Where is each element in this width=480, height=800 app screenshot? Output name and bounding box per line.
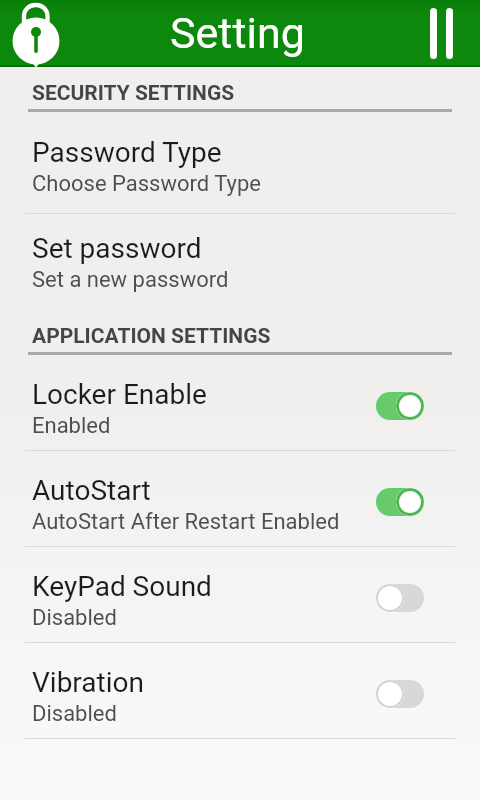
button[interactable]: Vibration	[0, 643, 480, 738]
button[interactable]: AutoStart	[0, 451, 480, 546]
staticText: Setting	[170, 8, 305, 58]
staticText: AutoStart	[32, 474, 151, 506]
button[interactable]	[376, 584, 424, 612]
button[interactable]: KeyPad Sound	[0, 547, 480, 642]
button[interactable]: Set password	[0, 214, 480, 310]
staticText: Set a new password	[32, 267, 229, 293]
button[interactable]	[376, 392, 424, 420]
staticText: Password Type	[32, 136, 222, 168]
button[interactable]	[376, 488, 424, 516]
staticText: Locker Enable	[32, 378, 207, 410]
button[interactable]	[430, 8, 453, 59]
staticText: Disabled	[32, 701, 117, 727]
staticText: Vibration	[32, 666, 144, 698]
button[interactable]: Password Type	[0, 112, 480, 213]
staticText: Disabled	[32, 605, 117, 631]
staticText: KeyPad Sound	[32, 570, 212, 602]
staticText: SECURITY SETTINGS	[32, 81, 235, 106]
staticText: APPLICATION SETTINGS	[32, 324, 271, 349]
staticText: Choose Password Type	[32, 171, 261, 197]
button[interactable]	[376, 680, 424, 708]
staticText: Set password	[32, 232, 202, 264]
staticText: AutoStart After Restart Enabled	[32, 509, 340, 535]
button[interactable]	[7, 0, 65, 66]
button[interactable]: Locker Enable	[0, 355, 480, 450]
staticText: Enabled	[32, 413, 111, 439]
